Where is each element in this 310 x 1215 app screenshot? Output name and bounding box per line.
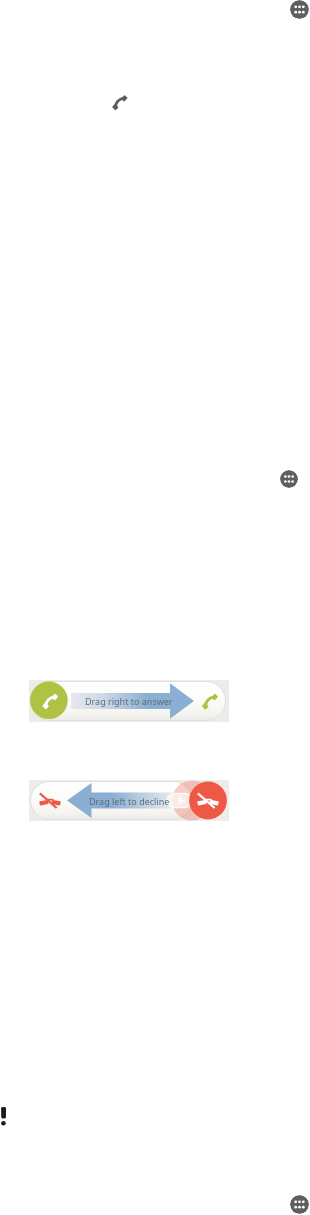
- other: Alert: [0, 1105, 9, 1127]
- button[interactable]: Drag right to answer: [29, 680, 229, 722]
- button[interactable]: Apps: [290, 0, 309, 19]
- button[interactable]: Apps: [280, 470, 298, 488]
- button[interactable]: Apps: [290, 1195, 309, 1214]
- other: Phone: [108, 91, 129, 112]
- staticText: Drag right to answer: [85, 695, 173, 707]
- staticText: Drag left to decline: [89, 795, 170, 807]
- button[interactable]: Drag left to decline: [29, 780, 229, 821]
